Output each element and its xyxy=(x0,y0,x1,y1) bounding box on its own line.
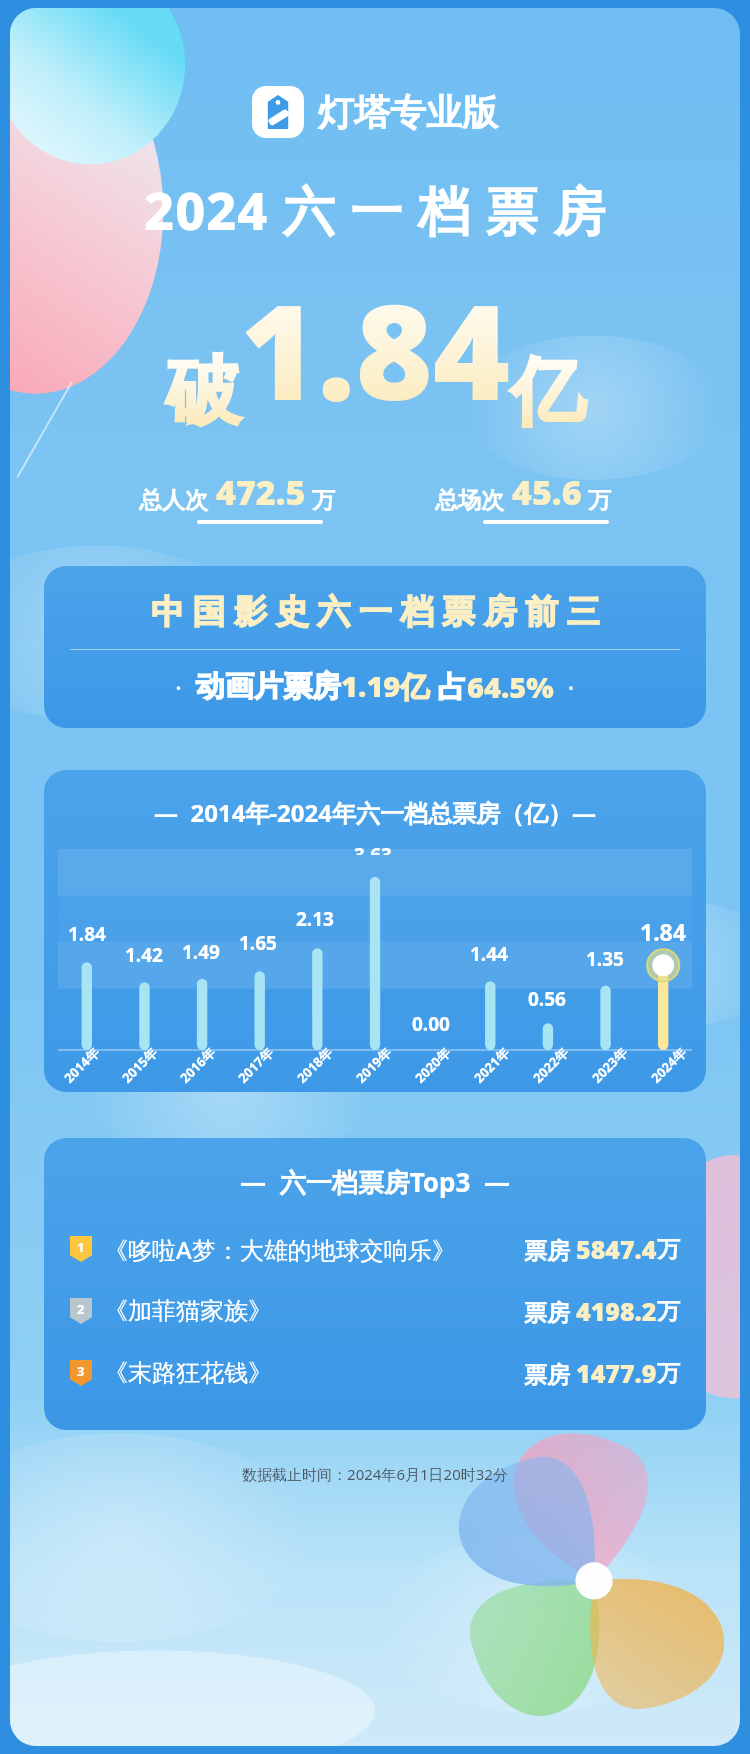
staticText: 45.6 xyxy=(512,469,582,515)
staticText: 中 国 影 史 六 一 档 票 房 前 三 xyxy=(151,588,600,633)
staticText: 0.00 xyxy=(412,1011,450,1037)
staticText: 动画片票房 xyxy=(196,668,341,705)
staticText: 2022年 xyxy=(529,1043,572,1086)
button[interactable]: 中 国 影 史 六 一 档 票 房 前 三 xyxy=(44,566,706,728)
staticText: 2024 六 一 档 票 房 xyxy=(10,174,740,245)
staticText: 2.13 xyxy=(296,906,334,932)
staticText: 5847.4 xyxy=(576,1232,657,1266)
staticText: 万 xyxy=(657,1359,680,1388)
staticText: 2016年 xyxy=(176,1043,219,1086)
staticText: 1.42 xyxy=(125,942,163,968)
staticText: 灯塔专业版 xyxy=(318,90,498,135)
staticText: 1.84 xyxy=(68,921,106,947)
staticText: 总人次 xyxy=(139,486,208,515)
staticText: 1.44 xyxy=(470,941,508,967)
staticText: 《末路狂花钱》 xyxy=(104,1358,272,1388)
staticText: 1477.9 xyxy=(576,1356,657,1390)
staticText: 3 xyxy=(77,1362,85,1380)
staticText: 数据截止时间：2024年6月1日20时32分 xyxy=(10,1464,740,1484)
staticText: 2024年 xyxy=(647,1043,690,1086)
staticText: 2014年 xyxy=(60,1043,103,1086)
staticText: 票房 xyxy=(524,1296,576,1327)
staticText: 万 xyxy=(657,1297,680,1326)
staticText: 4198.2 xyxy=(576,1294,657,1328)
staticText: 2 xyxy=(77,1300,85,1318)
staticText: 2015年 xyxy=(118,1043,161,1086)
staticText: 0.56 xyxy=(528,986,566,1012)
staticText: · xyxy=(175,669,196,704)
button[interactable]: 灯塔专业版 logo xyxy=(10,86,740,138)
staticText: 2018年 xyxy=(293,1043,336,1086)
other: 灯塔专业版 logo xyxy=(252,86,304,138)
staticText: 万 xyxy=(588,486,611,515)
staticText: 破 xyxy=(166,346,240,439)
staticText: 64.5% xyxy=(467,667,554,706)
staticText: — 六一档票房Top3 — xyxy=(44,1164,706,1200)
staticText: 票房 xyxy=(524,1234,576,1265)
staticText: 1.84 xyxy=(240,259,511,439)
button[interactable]: — 2014年-2024年六一档总票房（亿）— xyxy=(44,770,706,1092)
staticText: 2023年 xyxy=(588,1043,631,1086)
staticText: 亿 xyxy=(511,346,585,439)
staticText: — 2014年-2024年六一档总票房（亿）— xyxy=(44,796,706,829)
staticText: 2020年 xyxy=(411,1043,454,1086)
staticText: 总场次 xyxy=(435,486,504,515)
staticText: 《加菲猫家族》 xyxy=(104,1296,272,1326)
staticText: 2017年 xyxy=(234,1043,277,1086)
staticText: 《哆啦A梦：大雄的地球交响乐》 xyxy=(104,1233,456,1266)
staticText: 2019年 xyxy=(352,1043,395,1086)
staticText: 1.19亿 xyxy=(341,666,430,706)
staticText: 1.35 xyxy=(586,946,624,972)
staticText: 1.65 xyxy=(239,930,277,956)
staticText: 占 xyxy=(430,666,467,706)
button[interactable]: 3 xyxy=(44,1342,706,1404)
staticText: · xyxy=(554,669,575,704)
staticText: 1 xyxy=(77,1238,85,1256)
button[interactable]: 2 xyxy=(44,1280,706,1342)
staticText: 1.84 xyxy=(640,916,686,947)
staticText: 万 xyxy=(657,1235,680,1264)
staticText: 3.63 xyxy=(354,842,392,855)
staticText: 472.5 xyxy=(216,469,306,515)
staticText: 万 xyxy=(312,486,335,515)
button[interactable]: 1 xyxy=(44,1218,706,1280)
staticText: 1.49 xyxy=(182,939,220,965)
staticText: 2021年 xyxy=(470,1043,513,1086)
staticText: 票房 xyxy=(524,1358,576,1389)
